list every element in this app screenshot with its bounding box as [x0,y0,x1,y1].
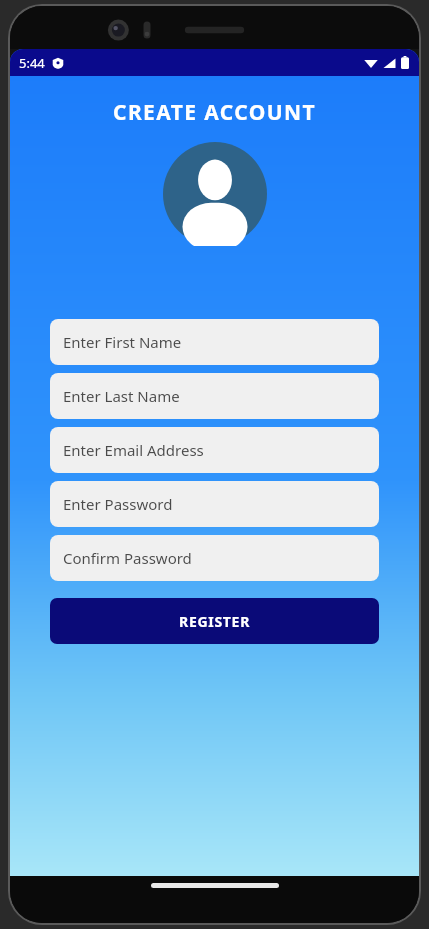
other: Profile photo [163,142,267,246]
button[interactable]: Enter Email Address [50,427,379,473]
staticText: Enter First Name [63,332,182,352]
staticText: Enter Email Address [63,440,204,460]
staticText: 5:44 [19,54,45,72]
button[interactable]: Enter Password [50,481,379,527]
button[interactable]: Enter Last Name [50,373,379,419]
staticText: Confirm Password [63,548,192,568]
staticText: Enter Password [63,494,173,514]
staticText: Enter Last Name [63,386,180,406]
button[interactable]: REGISTER [50,598,379,644]
staticText: REGISTER [179,612,251,631]
button[interactable]: Confirm Password [50,535,379,581]
staticText: CREATE ACCOUNT [10,98,419,127]
button[interactable]: Enter First Name [50,319,379,365]
